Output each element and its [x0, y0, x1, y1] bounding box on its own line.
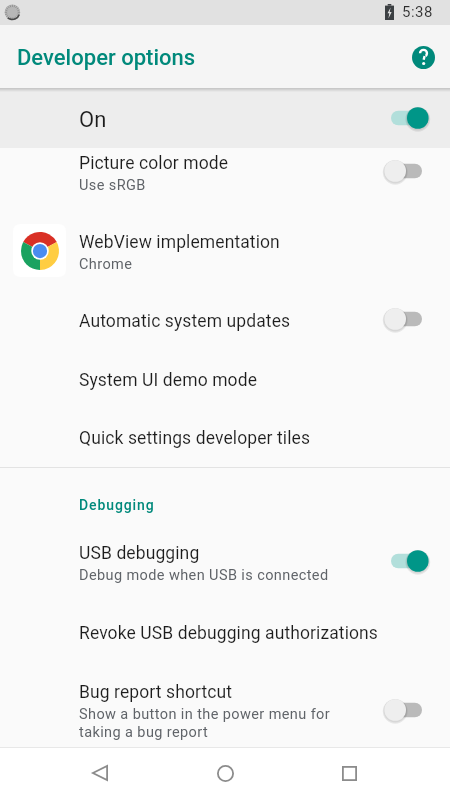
button[interactable]: Home: [201, 749, 249, 797]
staticText: Automatic system updates: [79, 311, 291, 332]
staticText: Chrome: [79, 256, 133, 273]
button[interactable]: [0, 677, 450, 757]
staticText: Revoke USB debugging authorizations: [79, 623, 379, 644]
staticText: Use sRGB: [79, 177, 146, 194]
staticText: Show a button in the power menu for taki…: [79, 706, 331, 740]
button[interactable]: [0, 306, 450, 365]
staticText: System UI demo mode: [79, 370, 258, 391]
button[interactable]: Recent apps: [325, 749, 373, 797]
staticText: 5:38: [402, 3, 433, 21]
button[interactable]: [0, 365, 450, 424]
staticText: Debugging: [79, 497, 155, 513]
button[interactable]: [0, 148, 450, 227]
staticText: Picture color mode: [79, 153, 229, 174]
button[interactable]: Help: [407, 41, 439, 73]
button[interactable]: [0, 424, 450, 468]
button[interactable]: [0, 618, 450, 677]
staticText: Debug mode when USB is connected: [79, 567, 329, 584]
staticText: Bug report shortcut: [79, 682, 233, 703]
staticText: WebView implementation: [79, 232, 280, 253]
staticText: USB debugging: [79, 543, 200, 564]
button[interactable]: [0, 538, 450, 618]
button[interactable]: Back: [76, 749, 124, 797]
staticText: Quick settings developer tiles: [79, 428, 311, 449]
button[interactable]: [0, 227, 450, 306]
staticText: Developer options: [17, 45, 196, 71]
staticText: On: [79, 107, 107, 133]
button[interactable]: [0, 88, 450, 148]
